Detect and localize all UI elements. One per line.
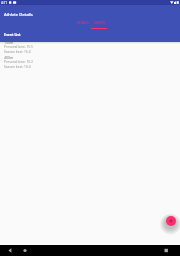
button[interactable]: Back [5, 245, 17, 256]
staticText: 100m [4, 40, 14, 45]
staticText: Event List [4, 32, 21, 37]
staticText: Personal best: 10.2 [4, 60, 33, 64]
button[interactable]: EVENTS [91, 21, 107, 29]
staticText: Season best: 10.4 [4, 65, 31, 69]
staticText: Personal best: 15.5 [4, 45, 33, 49]
button[interactable]: 400m [0, 55, 180, 70]
staticText: DETAILS [77, 21, 89, 25]
staticText: 4:11 [1, 1, 7, 5]
button[interactable]: Home [19, 245, 31, 256]
staticText: EVENTS [94, 21, 105, 25]
button[interactable]: Add event [166, 216, 176, 226]
staticText: 400m [4, 55, 14, 60]
button[interactable]: Recent apps [160, 245, 172, 256]
staticText: Season best: 16.4 [4, 50, 31, 54]
button[interactable]: 100m [0, 40, 180, 55]
button[interactable]: DETAILS [75, 21, 91, 28]
staticText: Athlete Details [4, 12, 33, 18]
